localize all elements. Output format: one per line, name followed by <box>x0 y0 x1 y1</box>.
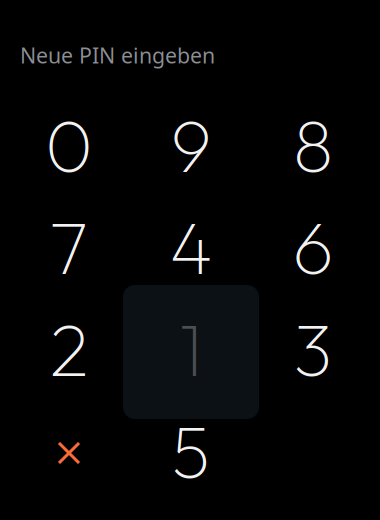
button[interactable]: 7 <box>8 196 130 298</box>
button[interactable]: Löschen <box>8 400 130 502</box>
button[interactable]: 2 <box>8 298 130 400</box>
button[interactable]: 1 <box>130 298 252 400</box>
staticText: 7 <box>49 201 88 293</box>
staticText: 0 <box>45 99 93 191</box>
staticText: 6 <box>292 201 333 293</box>
staticText: 8 <box>293 99 333 191</box>
staticText: 3 <box>293 303 332 395</box>
staticText: 5 <box>171 405 210 497</box>
button[interactable]: 5 <box>130 400 252 502</box>
button[interactable]: 6 <box>252 196 374 298</box>
button[interactable]: 9 <box>130 94 252 196</box>
staticText: 4 <box>169 201 212 293</box>
staticText: 9 <box>170 99 211 191</box>
button[interactable]: 3 <box>252 298 374 400</box>
staticText: 2 <box>49 303 88 395</box>
button[interactable]: 4 <box>130 196 252 298</box>
staticText: 1 <box>179 303 203 395</box>
button[interactable]: 0 <box>8 94 130 196</box>
button[interactable]: 8 <box>252 94 374 196</box>
staticText: Neue PIN eingeben <box>20 41 215 69</box>
